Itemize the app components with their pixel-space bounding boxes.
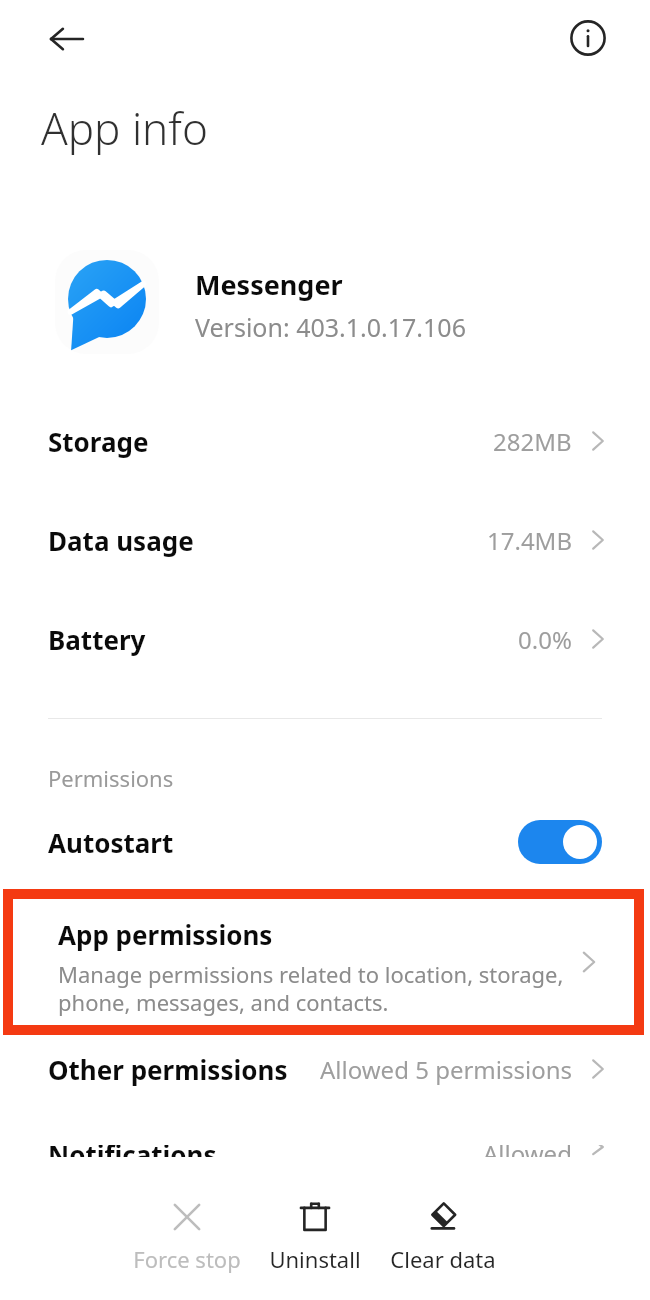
staticText: Permissions [48, 763, 174, 793]
staticText: Uninstall [269, 1244, 361, 1274]
button[interactable]: Battery [0, 608, 650, 670]
staticText: 17.4MB [487, 524, 572, 557]
staticText: Allowed 5 permissions [320, 1053, 572, 1086]
button[interactable]: Storage [0, 410, 650, 472]
button[interactable]: Clear data [384, 1190, 502, 1274]
staticText: Clear data [390, 1244, 496, 1274]
button[interactable]: App details info [560, 10, 616, 66]
staticText: Data usage [48, 523, 194, 558]
button[interactable]: Force stop [128, 1190, 246, 1274]
staticText: App permissions [58, 917, 273, 952]
staticText: Manage permissions related to location, … [58, 959, 564, 1017]
staticText: Notifications [48, 1145, 217, 1157]
staticText: Other permissions [48, 1052, 288, 1087]
button[interactable]: App permissions [3, 889, 644, 1035]
button[interactable]: Uninstall [256, 1190, 374, 1274]
staticText: 0.0% [518, 623, 572, 656]
staticText: Version: 403.1.0.17.106 [195, 310, 466, 344]
staticText: App info [41, 98, 208, 158]
staticText: 282MB [493, 425, 572, 458]
button[interactable]: Data usage [0, 509, 650, 571]
staticText: Battery [48, 622, 146, 657]
staticText: Messenger [195, 266, 343, 303]
staticText: Force stop [133, 1244, 241, 1274]
button[interactable]: Notifications [0, 1145, 650, 1165]
button[interactable]: Back [40, 12, 94, 66]
button[interactable]: Autostart [0, 805, 650, 879]
staticText: Autostart [48, 825, 174, 860]
staticText: Allowed [483, 1145, 572, 1157]
button[interactable]: Other permissions [0, 1037, 650, 1101]
staticText: Storage [48, 424, 149, 459]
